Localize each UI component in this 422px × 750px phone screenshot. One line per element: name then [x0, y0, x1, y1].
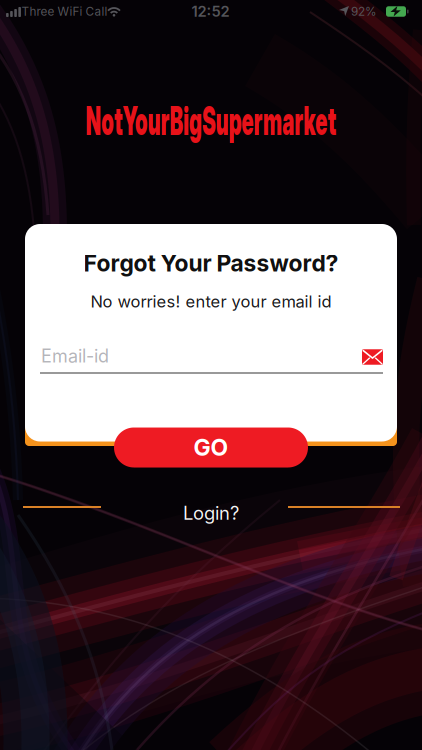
staticText: 92% [351, 4, 377, 19]
staticText: 12:52 [191, 3, 229, 20]
staticText: GO [193, 434, 228, 461]
button[interactable]: Login? [175, 498, 247, 528]
button[interactable]: GO [114, 427, 308, 467]
staticText: No worries! enter your email id [90, 291, 331, 311]
staticText: Login? [183, 502, 239, 524]
staticText: NotYourBigSupermarket [0, 98, 422, 144]
staticText: Email-id [41, 345, 109, 367]
staticText: Forgot Your Password? [83, 249, 338, 277]
staticText: Three WiFi Call [21, 4, 107, 19]
button[interactable]: Email-id [25, 224, 397, 441]
